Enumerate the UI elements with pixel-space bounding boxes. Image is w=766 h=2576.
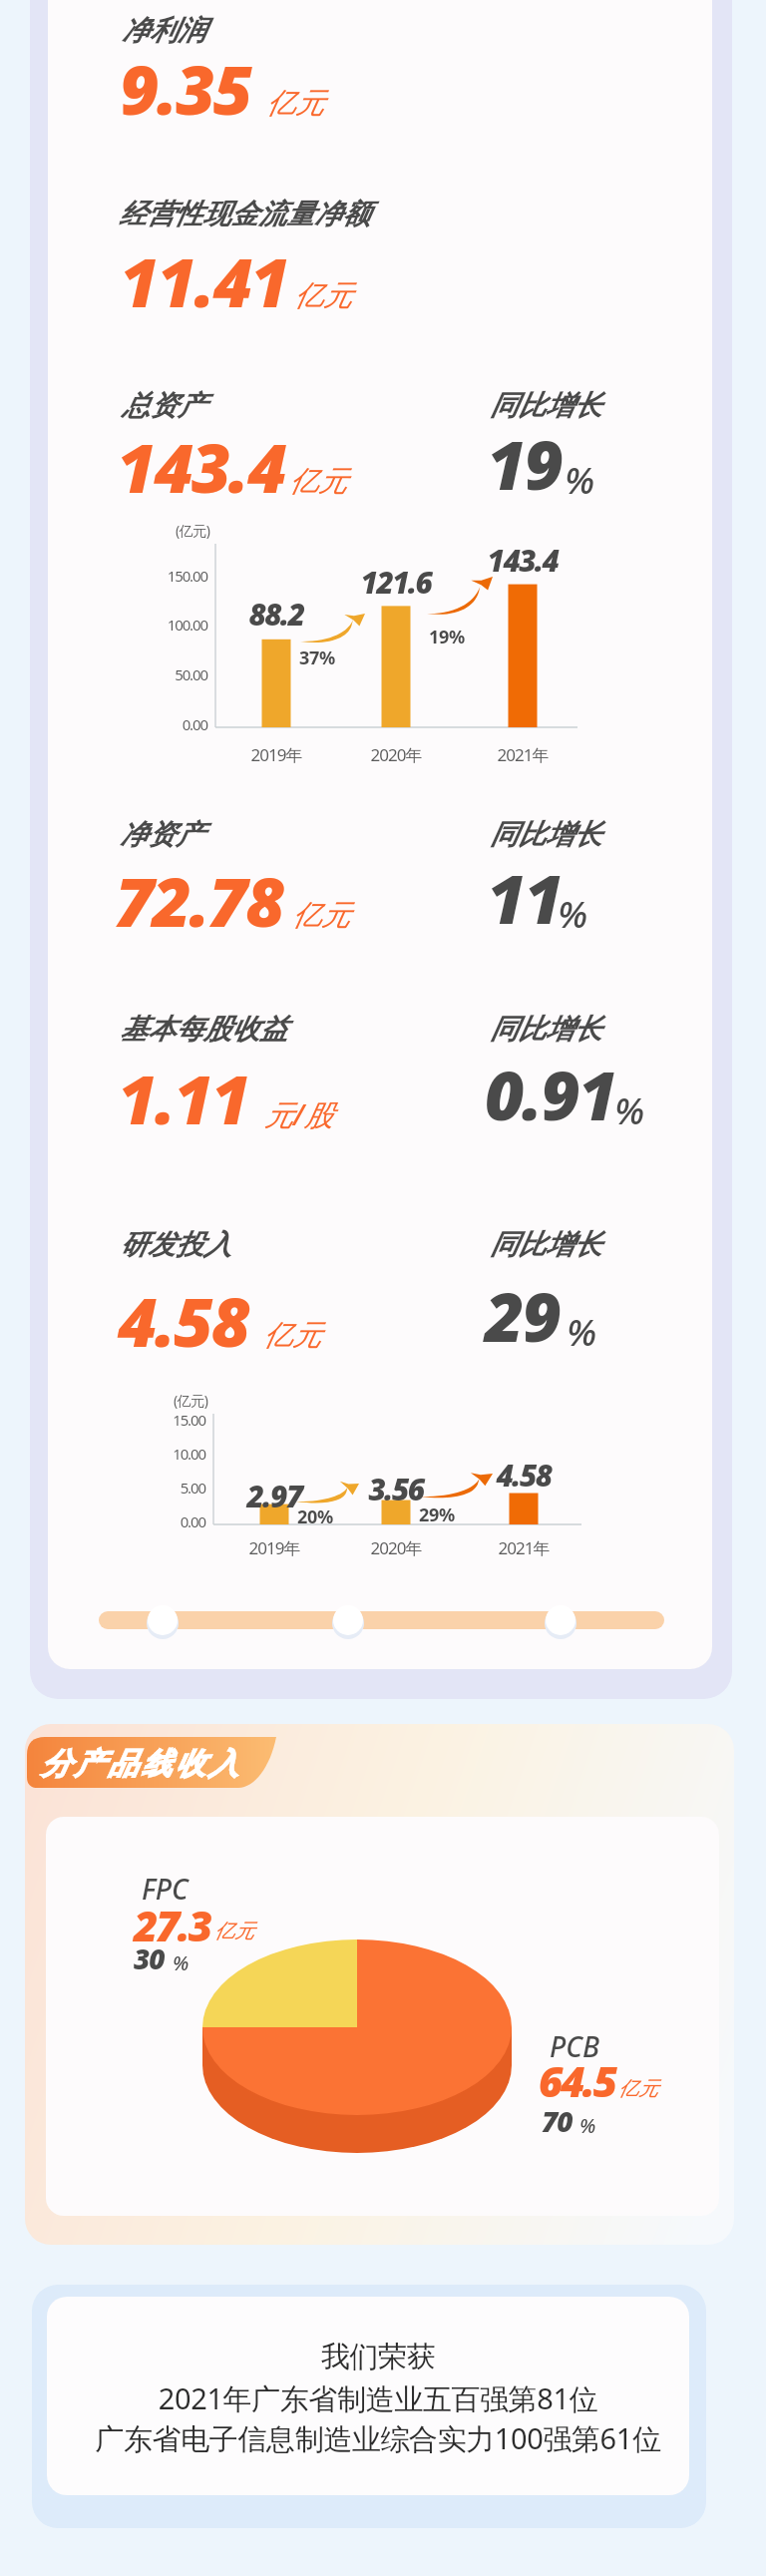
staticText: 亿元 [263,1317,321,1354]
staticText: 143.4 [117,420,285,513]
staticText: 100.00 [138,615,207,635]
staticText: 2019年 [224,1536,324,1559]
staticText: 15.00 [136,1410,205,1430]
staticText: 亿元 [289,463,347,500]
staticText: 30 [134,1939,165,1977]
staticText: % [567,1306,597,1356]
staticText: 4.58 [118,1274,249,1367]
staticText: 2021年 [474,1536,574,1559]
staticText: 11.41 [120,234,288,327]
staticText: 20% [297,1504,333,1529]
staticText: 72.78 [115,854,283,947]
staticText: 3.56 [336,1469,456,1509]
staticText: (亿元) [174,1391,208,1410]
staticText: 我们荣获 [57,2339,699,2375]
staticText: 11 [487,851,562,944]
staticText: 88.2 [216,594,336,635]
staticText: % [614,1084,645,1134]
staticText: 亿元 [266,85,324,122]
staticText: 0.91 [485,1048,616,1140]
staticText: 亿元 [294,277,352,314]
staticText: 广东省电子信息制造业综合实力100强第61位 [57,2418,699,2458]
staticText: 19% [429,625,465,649]
staticText: % [173,1949,190,1976]
staticText: 同比增长 [490,388,601,423]
staticText: 亿元 [618,2076,658,2101]
staticText: 37% [299,645,335,670]
staticText: 同比增长 [490,817,601,852]
staticText: 元/股 [264,1094,333,1134]
staticText: FPC [142,1870,189,1908]
staticText: 2021年 [473,743,573,766]
staticText: 150.00 [138,566,207,586]
staticText: 2021年广东省制造业五百强第81位 [57,2378,699,2418]
staticText: 同比增长 [490,1012,601,1047]
staticText: 0.00 [138,714,207,734]
staticText: 9.35 [120,42,251,135]
staticText: (亿元) [176,521,210,540]
staticText: 5.00 [136,1478,205,1498]
staticText: 19 [487,417,562,510]
staticText: 4.58 [464,1455,583,1496]
staticText: 经营性现金流量净额 [119,197,370,231]
staticText: 50.00 [138,664,207,684]
staticText: 净资产 [120,817,203,852]
staticText: % [558,888,588,938]
staticText: 净利润 [122,13,205,48]
staticText: 总资产 [122,388,205,423]
staticText: 1.11 [118,1052,249,1144]
staticText: 2020年 [346,1536,446,1559]
staticText: 基本每股收益 [120,1012,287,1047]
staticText: 0.00 [136,1511,205,1531]
button[interactable]: 分产品线收入 [25,1724,282,1794]
staticText: 121.6 [336,562,456,603]
staticText: 27.3 [134,1897,210,1953]
staticText: 2020年 [346,743,446,766]
staticText: % [579,2112,596,2139]
staticText: 2019年 [226,743,326,766]
staticText: 2.97 [214,1476,334,1516]
staticText: PCB [550,2027,599,2065]
staticText: 70 [542,2102,573,2140]
staticText: 亿元 [214,1919,254,1943]
staticText: 研发投入 [120,1227,231,1262]
staticText: % [565,454,595,504]
staticText: 亿元 [292,897,350,934]
staticText: 64.5 [539,2052,615,2109]
staticText: 同比增长 [490,1227,601,1262]
staticText: 143.4 [463,540,582,581]
staticText: 分产品线收入 [41,1745,242,1783]
staticText: 10.00 [136,1444,205,1464]
staticText: 29 [485,1269,560,1362]
staticText: 29% [419,1503,455,1527]
